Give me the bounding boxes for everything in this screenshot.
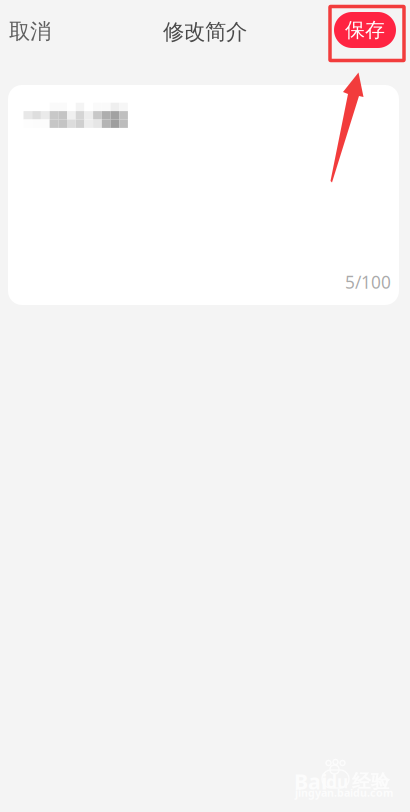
staticText: 取消 [9, 18, 51, 45]
staticText: 修改简介 [163, 19, 247, 45]
button[interactable]: 保存 [334, 12, 396, 48]
staticText: Bai [294, 767, 327, 795]
staticText: 保存 [345, 18, 385, 42]
staticText: 5/100 [345, 270, 391, 293]
staticText: 经验 [352, 770, 390, 793]
staticText: du [326, 770, 348, 793]
staticText: jingyan.baidu.com [295, 785, 393, 800]
button[interactable]: 取消 [0, 9, 69, 53]
